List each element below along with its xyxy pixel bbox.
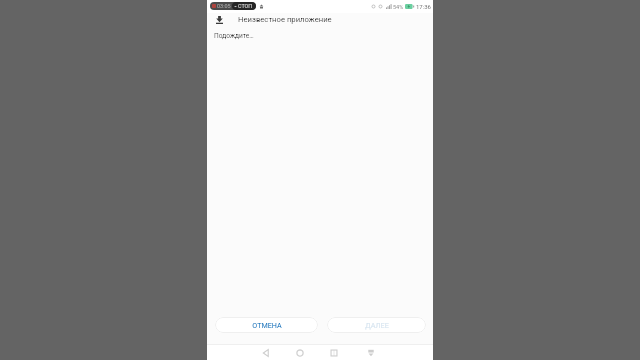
staticText: 54%	[393, 4, 404, 10]
button[interactable]: Recent apps	[325, 344, 343, 360]
staticText: ДАЛЕЕ	[365, 321, 389, 329]
button[interactable]: Screen recording	[210, 2, 256, 10]
staticText: 17:36	[416, 3, 431, 10]
button[interactable]: Hide navigation bar	[362, 344, 380, 360]
button[interactable]: ОТМЕНА	[215, 317, 318, 333]
button[interactable]: Home	[291, 344, 309, 360]
staticText: Неизвестное приложение	[238, 15, 332, 24]
staticText: Подождите…	[214, 32, 254, 40]
button[interactable]: Install package	[212, 13, 226, 27]
staticText: 03:05	[217, 3, 231, 9]
staticText: ОТМЕНА	[252, 321, 282, 329]
staticText: СТОП	[238, 3, 253, 9]
button[interactable]: ДАЛЕЕ	[327, 317, 426, 333]
button[interactable]: Back	[257, 344, 275, 360]
